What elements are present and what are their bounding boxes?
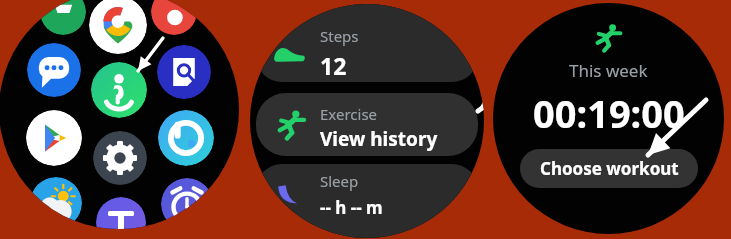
- staticText: Choose workout: [540, 157, 679, 180]
- staticText: Sleep: [320, 171, 359, 191]
- button[interactable]: App: [157, 45, 211, 99]
- button[interactable]: Choose workout: [520, 149, 698, 188]
- button[interactable]: App: [96, 197, 146, 229]
- button[interactable]: App: [30, 177, 82, 229]
- button[interactable]: App: [26, 110, 82, 166]
- staticText: This week: [569, 59, 648, 82]
- button[interactable]: App: [91, 62, 147, 118]
- button[interactable]: App: [89, 0, 147, 54]
- staticText: Exercise: [320, 104, 378, 124]
- button[interactable]: Exercise: [256, 93, 478, 156]
- button[interactable]: App: [158, 110, 214, 166]
- button[interactable]: App: [40, 0, 86, 35]
- staticText: Steps: [320, 26, 359, 46]
- staticText: -- h -- m: [320, 196, 383, 219]
- button[interactable]: Steps: [256, 4, 478, 82]
- button[interactable]: Sleep: [256, 164, 478, 238]
- button[interactable]: App: [151, 0, 197, 35]
- button[interactable]: App: [27, 43, 81, 97]
- staticText: 00:19:00: [533, 87, 685, 139]
- staticText: 12: [320, 50, 347, 81]
- button[interactable]: App: [161, 178, 213, 229]
- button[interactable]: App: [93, 131, 147, 185]
- staticText: View history: [320, 126, 438, 152]
